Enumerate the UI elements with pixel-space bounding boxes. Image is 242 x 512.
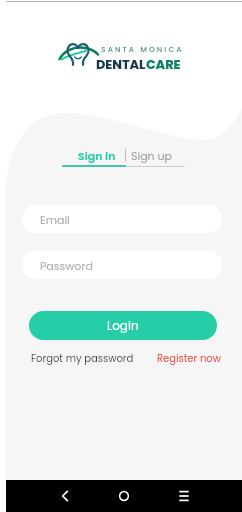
button[interactable]: Register now	[157, 351, 221, 365]
button[interactable]: Login	[29, 311, 217, 340]
staticText: CARE	[146, 56, 181, 74]
staticText: Email	[40, 212, 70, 227]
staticText: Forgot my password	[31, 351, 134, 365]
button[interactable]: Home	[109, 481, 139, 511]
staticText: Register now	[157, 351, 221, 365]
staticText: SANTA MONICA	[101, 44, 184, 54]
staticText: Sign up	[131, 148, 173, 163]
button[interactable]: Email	[22, 205, 222, 233]
button[interactable]: Back	[50, 481, 80, 511]
staticText: Login	[107, 317, 139, 334]
staticText: DENTAL	[96, 56, 146, 74]
button[interactable]: Recent apps	[169, 481, 199, 511]
staticText: Sign in	[78, 148, 116, 163]
button[interactable]: Sign in	[78, 148, 116, 163]
button[interactable]: Sign up	[131, 148, 173, 163]
staticText: Password	[40, 258, 93, 273]
button[interactable]: Forgot my password	[31, 351, 134, 365]
button[interactable]: Password	[22, 251, 222, 279]
